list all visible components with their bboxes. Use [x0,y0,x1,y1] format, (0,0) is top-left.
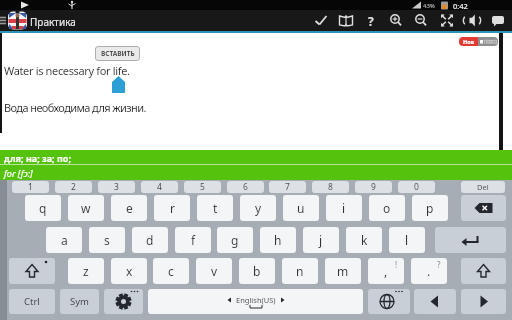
button[interactable]: 1 [12,181,49,193]
button[interactable]: 7 [269,181,306,193]
staticText: t [213,200,218,216]
staticText: 6 [243,181,248,193]
button[interactable]: m [325,258,361,284]
staticText: 9 [371,181,376,193]
staticText: b [253,263,261,279]
staticText: Sym [70,295,89,308]
button[interactable]: 8 [312,181,349,193]
staticText: 4 [157,181,162,193]
button[interactable]: Практика [30,15,76,29]
staticText: f [191,232,196,248]
staticText: d [146,232,154,248]
button[interactable]: e [111,195,147,221]
button[interactable]: u [283,195,319,221]
button[interactable]: l [389,227,425,253]
staticText: z [83,263,89,279]
staticText: ВСТАВИТЬ [101,49,135,58]
button[interactable] [461,289,506,314]
staticText: for [fɔ:] [4,167,33,179]
staticText: n [296,263,304,279]
staticText: 7 [285,181,290,193]
staticText: y [255,200,262,216]
button[interactable]: ВСТАВИТЬ [95,46,140,61]
staticText: Water is necessary for life. [4,63,130,78]
button[interactable]: s [89,227,125,253]
button[interactable] [461,258,506,284]
staticText: x [126,263,133,279]
button[interactable]: p [412,195,448,221]
button[interactable]: Del [461,181,505,193]
button[interactable]: Sym [60,289,99,314]
button[interactable] [414,289,456,314]
button[interactable] [368,289,410,314]
button[interactable]: 9 [355,181,392,193]
button[interactable]: a [46,227,82,253]
button[interactable]: n [282,258,318,284]
button[interactable]: 4 [141,181,178,193]
staticText: k [361,232,368,248]
staticText: l [405,232,409,248]
button[interactable]: h [260,227,296,253]
button[interactable]: y [240,195,276,221]
staticText: 3 [114,181,119,193]
staticText: ! [395,259,398,270]
staticText: m [337,263,349,279]
button[interactable] [435,227,506,253]
button[interactable] [9,258,55,284]
button[interactable]: Нов [459,37,498,46]
button[interactable]: g [217,227,253,253]
staticText: 8 [328,181,333,193]
staticText: h [274,232,282,248]
button[interactable]: z [68,258,104,284]
button[interactable]: b [239,258,275,284]
staticText: Вода необходима для жизни. [4,100,146,115]
button[interactable]: w [68,195,104,221]
button[interactable]: q [25,195,61,221]
staticText: r [170,200,175,216]
staticText: ? [437,259,441,270]
staticText: q [39,200,47,216]
button[interactable]: j [303,227,339,253]
button[interactable]: r [154,195,190,221]
button[interactable]: f [175,227,211,253]
button[interactable]: x [111,258,147,284]
staticText: Нов [463,38,474,45]
staticText: w [81,200,91,216]
staticText: , [384,263,388,279]
button[interactable]: k [346,227,382,253]
button[interactable]: 5 [184,181,221,193]
staticText: для; на; за; по; [4,152,71,164]
staticText: p [426,200,434,216]
button[interactable]: English(US) [148,289,363,314]
staticText: v [211,263,218,279]
button[interactable]: Ctrl [9,289,55,314]
staticText: g [231,232,239,248]
button[interactable]: t [197,195,233,221]
staticText: 1 [28,181,33,193]
staticText: i [342,200,346,216]
button[interactable]: c [153,258,189,284]
button[interactable]: . [411,258,447,284]
button[interactable]: 3 [98,181,135,193]
button[interactable]: o [369,195,405,221]
button[interactable]: i [326,195,362,221]
staticText: English(US) [236,295,276,305]
button[interactable]: 2 [55,181,92,193]
staticText: Del [477,182,489,192]
staticText: 0 [414,181,419,193]
staticText: . [427,263,431,279]
staticText: 0:42 [453,1,468,11]
button[interactable] [104,289,143,314]
button[interactable]: ? [368,13,374,29]
button[interactable]: v [196,258,232,284]
staticText: j [319,232,323,248]
staticText: o [383,200,391,216]
button[interactable]: , [368,258,404,284]
staticText: e [126,200,133,216]
staticText: Ctrl [24,295,40,308]
button[interactable] [461,195,506,221]
button[interactable]: 0 [398,181,435,193]
staticText: u [297,200,305,216]
button[interactable]: 6 [227,181,264,193]
button[interactable]: d [132,227,168,253]
